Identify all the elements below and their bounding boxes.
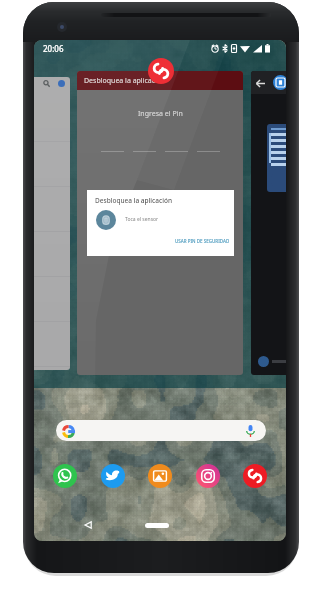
button[interactable]: USAR PIN DE SEGURIDAD [175, 238, 230, 244]
staticText: Desbloquea la aplicación [84, 76, 166, 86]
button[interactable]: Back [83, 520, 93, 530]
button[interactable]: Authy [243, 464, 267, 488]
staticText: Toca el sensor [125, 216, 159, 223]
other: Back [256, 79, 265, 88]
other: Authy [148, 58, 174, 84]
other: Help [58, 80, 65, 87]
button[interactable]: Search [34, 77, 70, 370]
staticText: Ingresa el Pin [138, 109, 183, 119]
button[interactable]: Home [145, 523, 169, 528]
button[interactable]: Twitter [101, 464, 125, 488]
button[interactable]: Back [251, 71, 286, 375]
button[interactable]: Photos [148, 464, 172, 488]
button[interactable] [56, 420, 266, 441]
staticText: 20:06 [43, 43, 64, 54]
staticText: Desbloquea la aplicación [95, 196, 172, 205]
button[interactable]: Instagram [196, 464, 220, 488]
button[interactable]: WhatsApp [53, 464, 77, 488]
other: Search [43, 80, 50, 87]
button[interactable]: Desbloquea la aplicación [77, 71, 243, 375]
